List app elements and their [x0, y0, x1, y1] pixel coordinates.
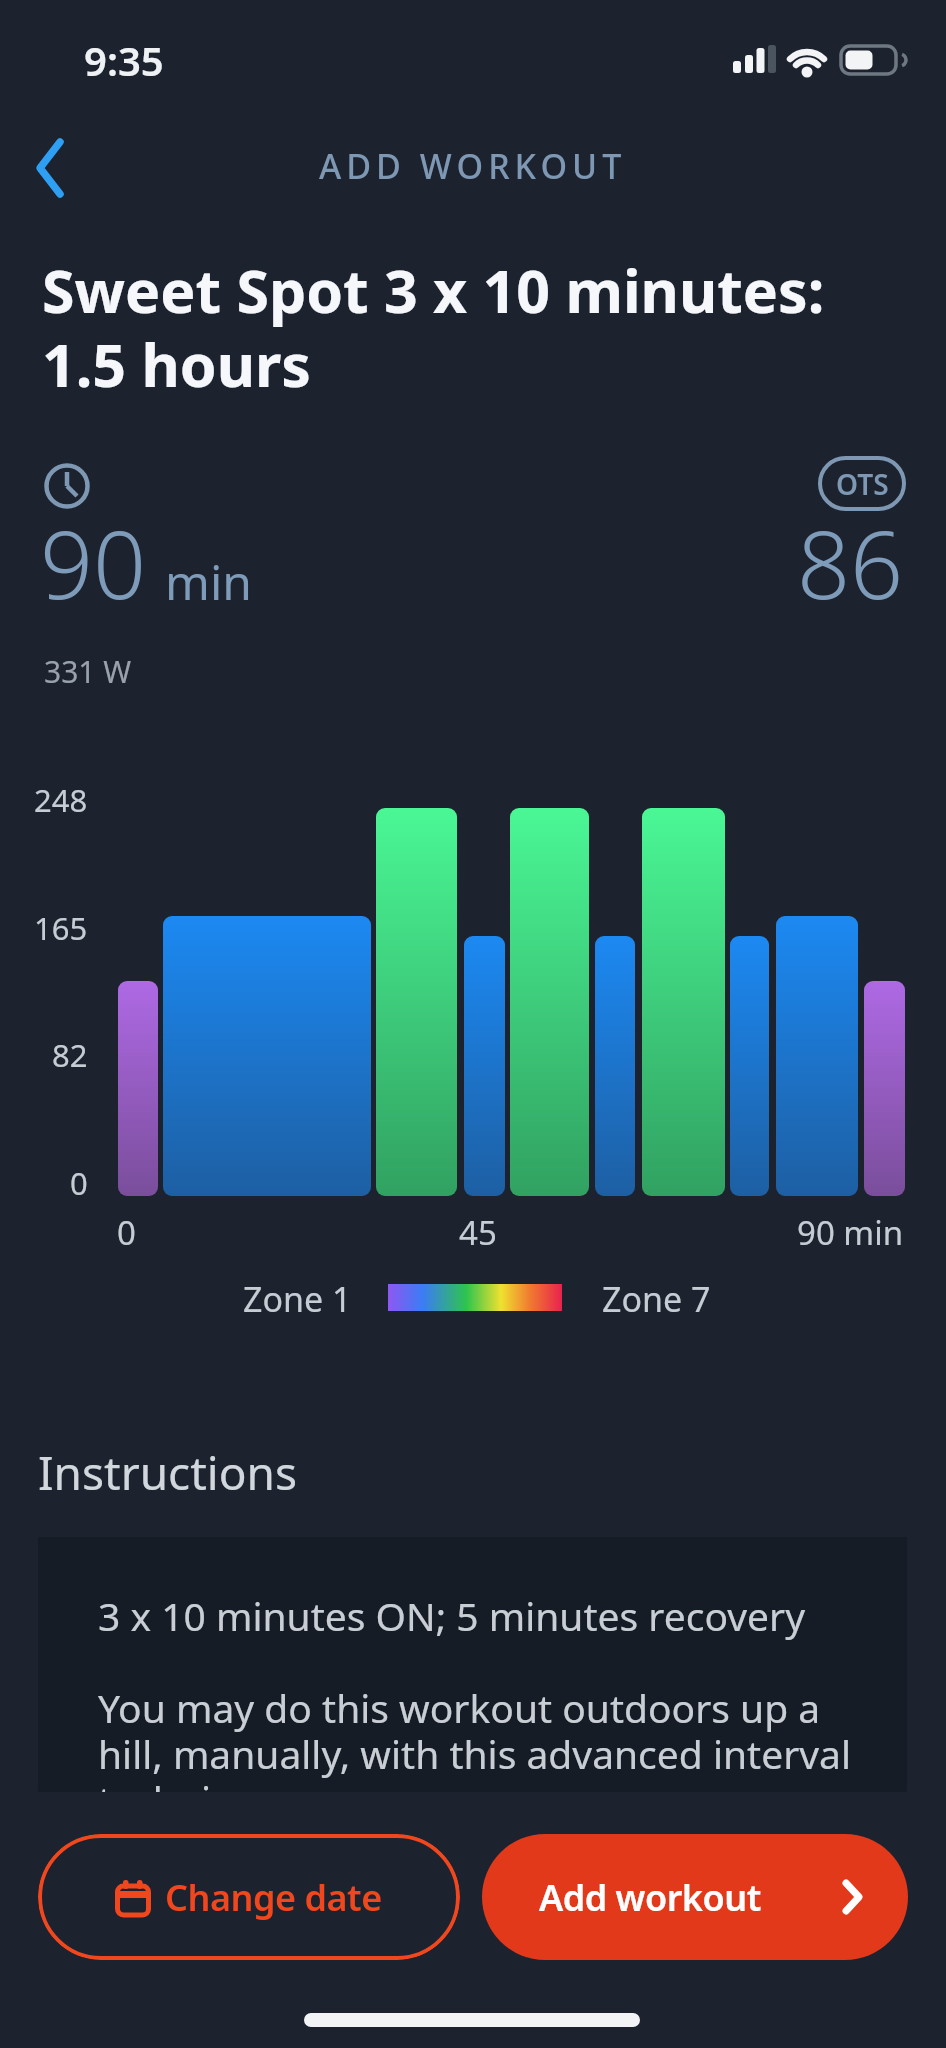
staticText: 0	[70, 1162, 88, 1204]
staticText: ADD WORKOUT	[319, 143, 627, 189]
button[interactable]: Add workout	[482, 1834, 908, 1960]
staticText: 9:35	[84, 33, 164, 87]
staticText: Instructions	[38, 1441, 297, 1504]
staticText: Add workout	[539, 1873, 761, 1922]
button[interactable]	[24, 128, 84, 208]
staticText: 331 W	[44, 651, 132, 692]
staticText: 3 x 10 minutes ON; 5 minutes recovery	[98, 1589, 806, 1642]
staticText: min	[165, 549, 252, 614]
staticText: 90 min	[797, 1210, 904, 1255]
button[interactable]: Change date	[38, 1834, 460, 1960]
staticText: 90	[40, 500, 147, 627]
staticText: OTS	[836, 465, 889, 503]
staticText: Sweet Spot 3 x 10 minutes: 1.5 hours	[42, 250, 825, 404]
staticText: 248	[34, 779, 88, 821]
staticText: 86	[797, 500, 904, 615]
staticText: 165	[34, 907, 88, 949]
staticText: Zone 1	[243, 1276, 352, 1322]
staticText: 45	[459, 1210, 497, 1255]
staticText: You may do this workout outdoors up a hi…	[98, 1681, 852, 1792]
staticText: Change date	[165, 1873, 382, 1922]
staticText: 0	[117, 1210, 136, 1255]
staticText: 82	[52, 1034, 88, 1076]
staticText: Zone 7	[602, 1276, 711, 1322]
